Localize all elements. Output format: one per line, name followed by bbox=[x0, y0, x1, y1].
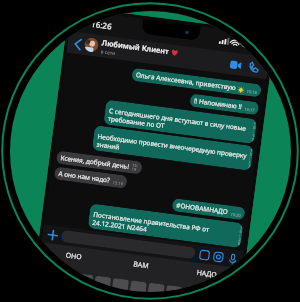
staticText: 15:19 bbox=[112, 180, 124, 186]
button[interactable]: Back bbox=[70, 36, 84, 51]
staticText: С сегодняшнего дня вступают в силу новые… bbox=[107, 106, 253, 142]
button[interactable] bbox=[93, 275, 111, 292]
staticText: Постановление правительства РФ от 24.12.… bbox=[92, 210, 240, 246]
button[interactable] bbox=[111, 278, 129, 292]
button[interactable]: А оно нам надо? bbox=[54, 166, 128, 189]
button[interactable]: Video call bbox=[227, 56, 244, 73]
button[interactable] bbox=[61, 230, 196, 259]
button[interactable]: Call bbox=[245, 58, 262, 75]
staticText: 15:19 bbox=[131, 162, 139, 172]
button[interactable]: С сегодняшнего дня вступают в силу новые… bbox=[103, 99, 257, 144]
staticText: 15:20 bbox=[230, 212, 242, 218]
button[interactable]: Ксения, добрый день! bbox=[56, 150, 143, 175]
button[interactable]: Stickers bbox=[197, 248, 212, 262]
button[interactable] bbox=[147, 283, 165, 292]
button[interactable] bbox=[76, 273, 93, 290]
button[interactable] bbox=[183, 287, 200, 292]
staticText: #ОНОВАМНАДО bbox=[176, 200, 228, 216]
staticText: Ольга Алексеевна, приветствую bbox=[135, 70, 237, 92]
staticText: 15:17 bbox=[244, 107, 256, 113]
button[interactable]: ОНО bbox=[39, 242, 109, 271]
button[interactable] bbox=[201, 290, 218, 292]
staticText: НАДО bbox=[196, 268, 218, 280]
button[interactable]: #ОНОВАМНАДО bbox=[171, 198, 246, 220]
button[interactable]: Voice message bbox=[225, 251, 240, 266]
staticText: 15:16 bbox=[246, 89, 258, 95]
button[interactable]: Необходимо провести внеочередную проверк… bbox=[92, 125, 254, 171]
button[interactable]: ‼ Напоминаю ‼ bbox=[189, 93, 259, 115]
button[interactable]: ВАМ bbox=[106, 251, 175, 280]
button[interactable] bbox=[165, 285, 183, 292]
staticText: 16:26 bbox=[91, 18, 113, 31]
button[interactable] bbox=[129, 280, 147, 292]
staticText: Необходимо провести внеочередную проверк… bbox=[96, 132, 250, 168]
staticText: А оно нам надо? bbox=[58, 169, 111, 185]
button[interactable]: Ольга Алексеевна, приветствую bbox=[131, 68, 262, 98]
staticText: в сети bbox=[100, 48, 116, 57]
staticText: Ксения, добрый день! bbox=[60, 153, 130, 171]
button[interactable]: Camera bbox=[211, 250, 226, 264]
button[interactable]: Постановление правительства РФ от 24.12.… bbox=[88, 203, 243, 248]
button[interactable]: Attach bbox=[46, 228, 60, 242]
staticText: ВАМ bbox=[133, 259, 150, 271]
button[interactable]: НАДО bbox=[173, 260, 242, 288]
staticText: ‼ Напоминаю ‼ bbox=[194, 96, 242, 111]
staticText: Любимый Клиент bbox=[101, 37, 170, 56]
button[interactable] bbox=[57, 271, 76, 288]
staticText: ОНО bbox=[65, 250, 82, 262]
